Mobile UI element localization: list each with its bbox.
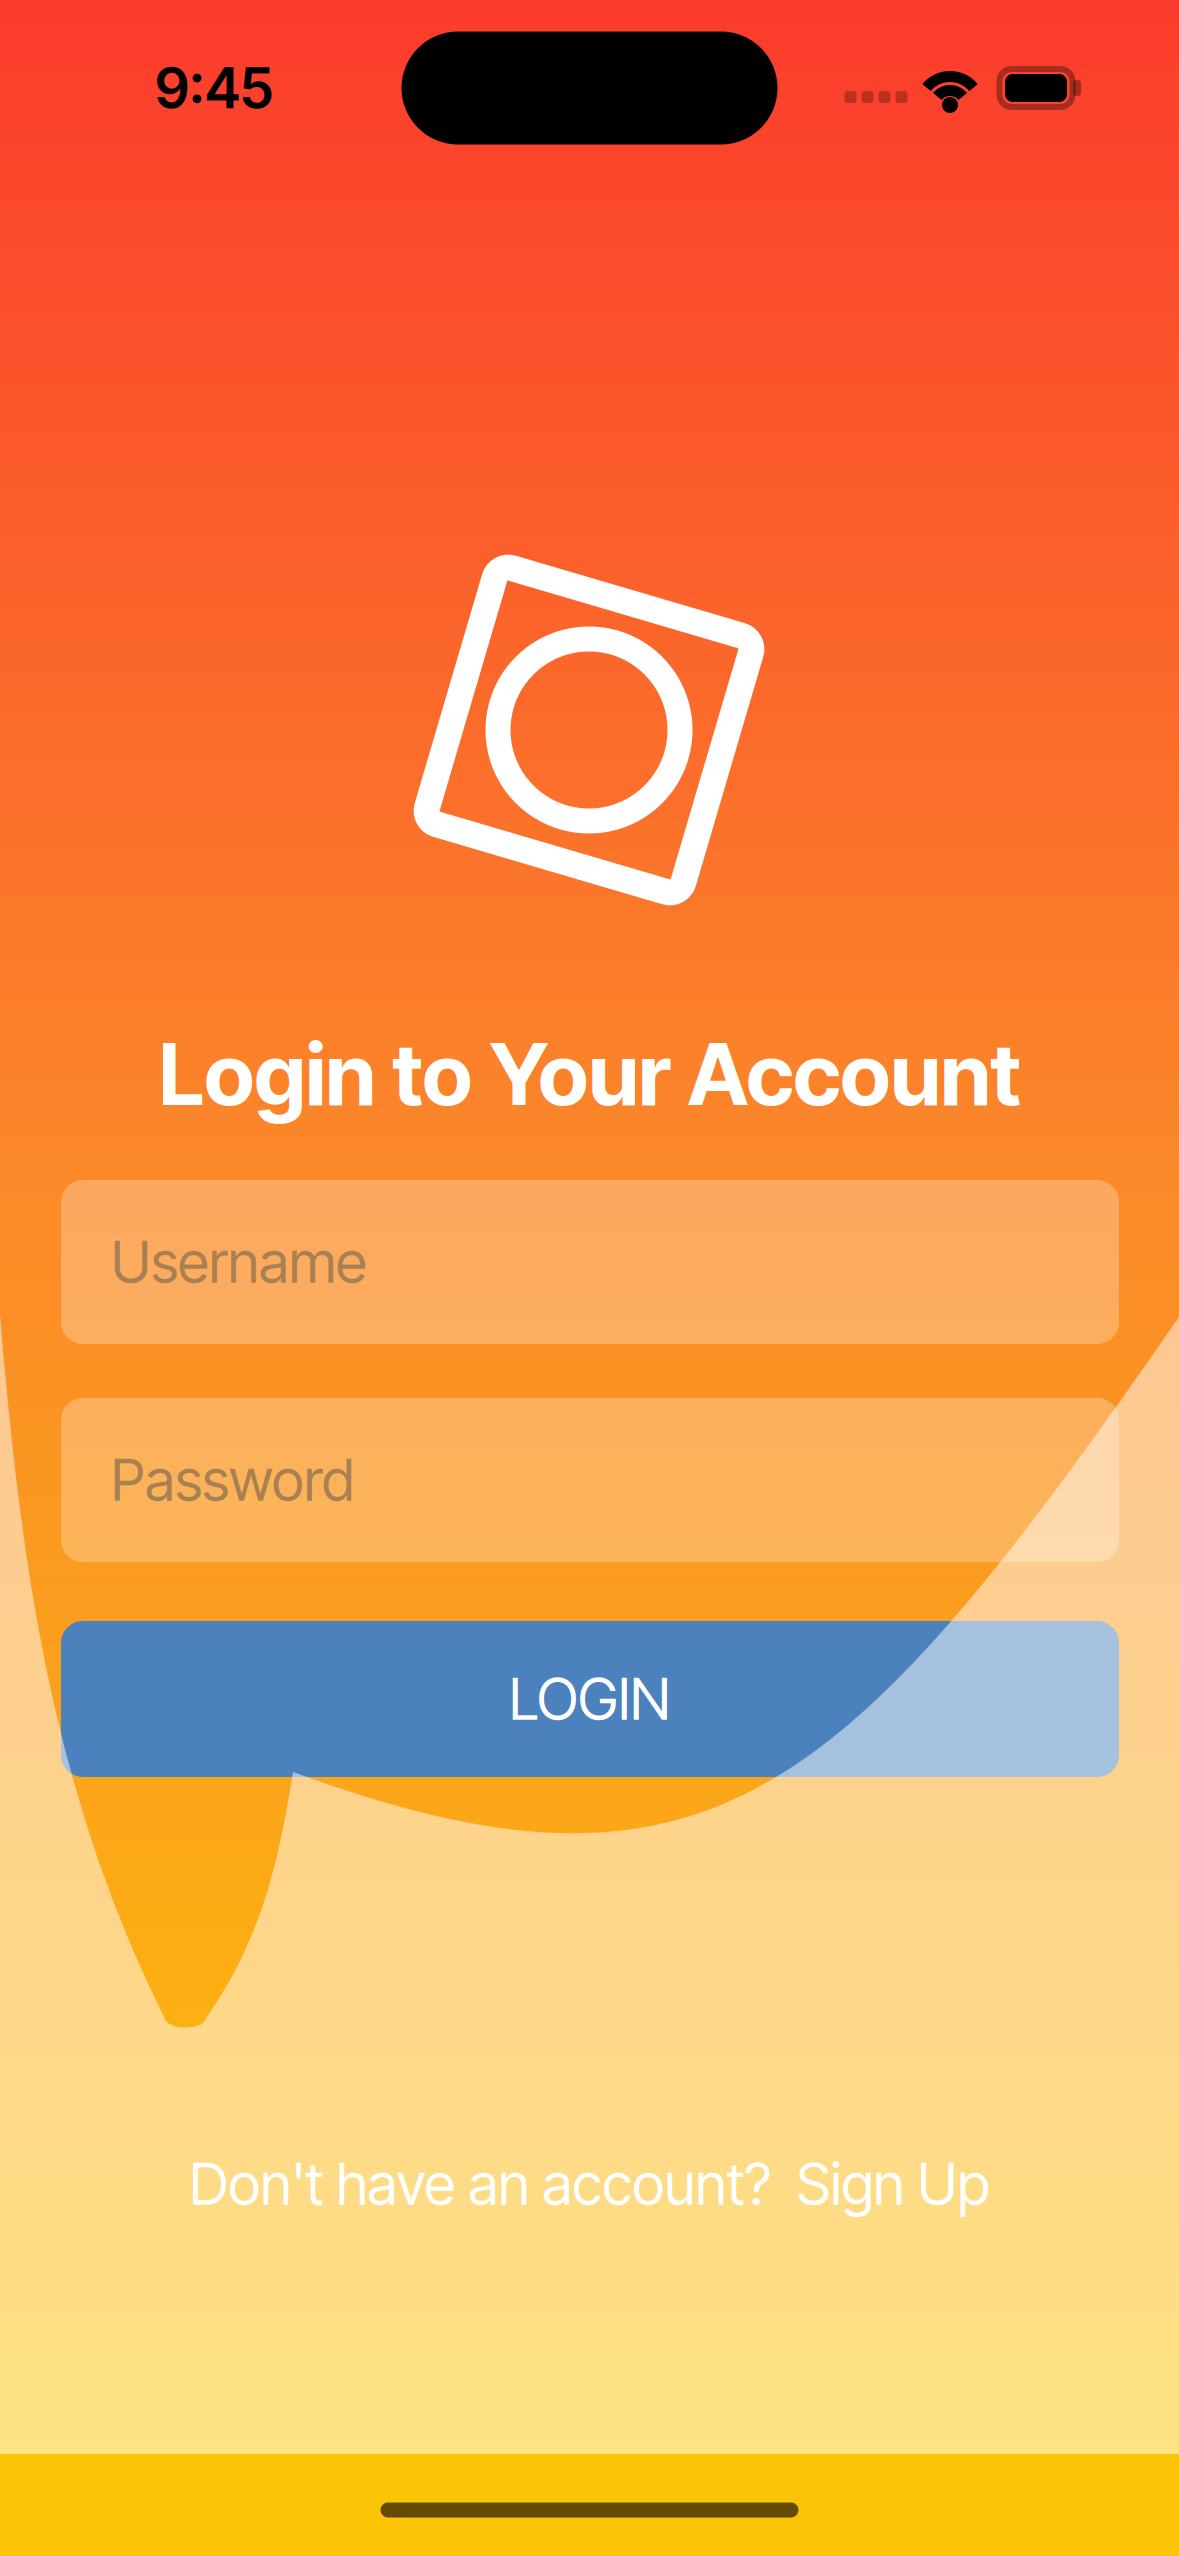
button[interactable]: LOGIN — [61, 1621, 1119, 1777]
button[interactable]: Password — [61, 1398, 1119, 1562]
staticText: Sign Up — [783, 2149, 989, 2219]
staticText: LOGIN — [509, 1664, 671, 1734]
staticText: Don't have an account? — [189, 2149, 783, 2219]
staticText: Login to Your Account — [158, 1022, 1020, 1126]
staticText: 9:45 — [155, 54, 273, 122]
staticText: Password — [111, 1445, 354, 1515]
staticText: Username — [111, 1227, 367, 1297]
button[interactable]: Username — [61, 1180, 1119, 1344]
button[interactable]: Don't have an account? — [165, 2131, 1013, 2237]
